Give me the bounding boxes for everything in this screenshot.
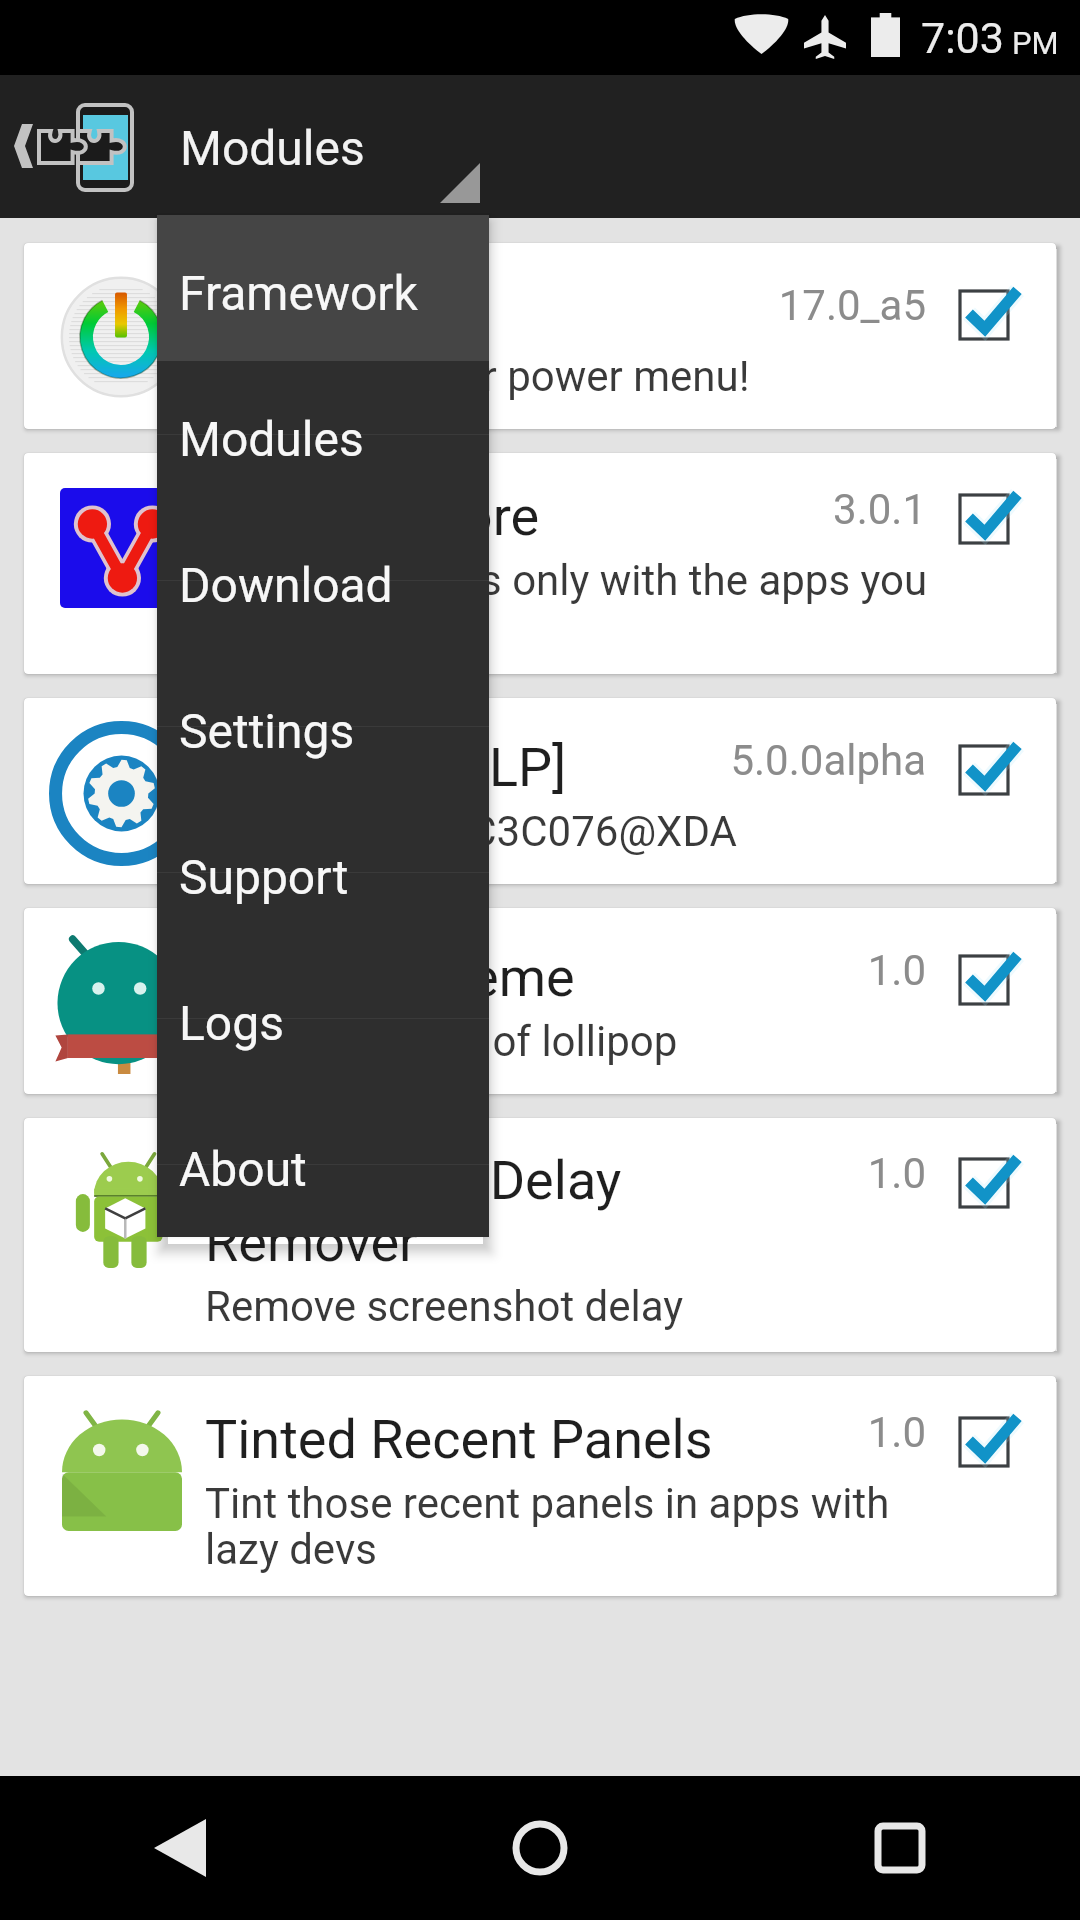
staticText: About <box>179 1141 307 1197</box>
staticText: XPrivacy Core <box>205 485 805 548</box>
button[interactable]: Lollipop Theme <box>24 908 1056 1094</box>
button[interactable]: Support <box>157 799 489 945</box>
staticText: 1.0 <box>636 1408 926 1457</box>
staticText: Lollipop Theme <box>205 946 805 1009</box>
button[interactable]: Enable module <box>954 738 1034 808</box>
staticText: Logs <box>179 995 284 1051</box>
staticText: 17.0_a5 <box>636 281 926 330</box>
button[interactable]: XPrivacy Core <box>24 453 1056 674</box>
staticText: Control settings only with the apps you … <box>205 556 965 652</box>
staticText: Modules <box>180 120 365 176</box>
staticText: Modules <box>179 411 364 467</box>
staticText: Lollipop theme of lollipop <box>205 1017 965 1066</box>
staticText: Tint those recent panels in apps with la… <box>205 1479 965 1575</box>
staticText: 5.0.0alpha <box>636 736 926 785</box>
staticText: Framework <box>179 265 418 321</box>
staticText: Tinted Recent Panels <box>205 1408 805 1471</box>
button[interactable]: APM <box>24 243 1056 429</box>
button[interactable]: Screenshot Delay Remover <box>24 1118 1056 1352</box>
staticText: 3.0.1 <box>636 485 926 534</box>
staticText: APM <box>205 281 805 344</box>
button[interactable]: Recents <box>720 1776 1080 1920</box>
button[interactable]: Enable module <box>954 487 1034 557</box>
staticText: Settings <box>179 703 355 759</box>
staticText: 1.0 <box>636 946 926 995</box>
button[interactable]: Logs <box>157 945 489 1091</box>
button[interactable]: Framework <box>157 215 489 361</box>
button[interactable]: Enable module <box>954 948 1034 1018</box>
staticText: 7:03 <box>921 13 1004 63</box>
staticText: 1.0 <box>636 1149 926 1198</box>
button[interactable]: Download <box>157 507 489 653</box>
button[interactable]: Navigate up <box>0 75 158 218</box>
button[interactable]: Home <box>360 1776 720 1920</box>
staticText: Customise your power menu! <box>205 352 965 401</box>
button[interactable]: Tinted Recent Panels <box>24 1376 1056 1596</box>
staticText: Download <box>179 557 393 613</box>
button[interactable]: Enable module <box>954 283 1034 353</box>
button[interactable]: Settings <box>157 653 489 799</box>
button[interactable]: Back <box>0 1776 360 1920</box>
staticText: GravityBox [LP] <box>205 736 805 799</box>
staticText: Tweak box by C3C076@XDA <box>205 807 965 856</box>
button[interactable]: Enable module <box>954 1151 1034 1221</box>
staticText: Support <box>179 849 349 905</box>
staticText: Remove screenshot delay <box>205 1282 965 1331</box>
button[interactable]: Modules <box>157 361 489 507</box>
button[interactable]: Enable module <box>954 1410 1034 1480</box>
button[interactable]: GravityBox [LP] <box>24 698 1056 884</box>
button[interactable]: About <box>157 1091 489 1237</box>
staticText: PM <box>1012 25 1059 61</box>
staticText: Screenshot Delay Remover <box>205 1149 805 1274</box>
